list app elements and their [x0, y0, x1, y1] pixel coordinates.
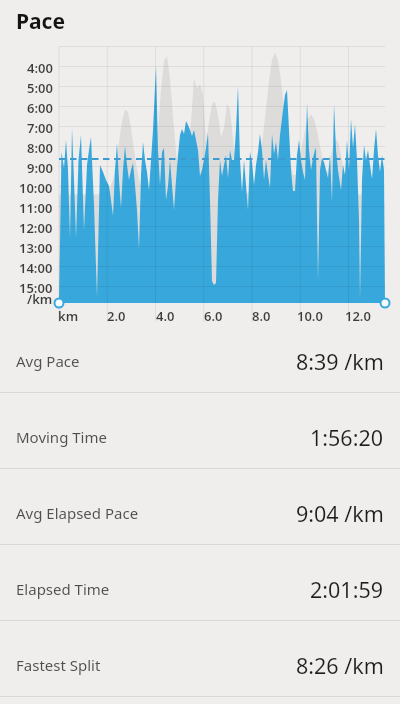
staticText: Fastest Split	[16, 655, 101, 675]
staticText: 5:00	[27, 79, 53, 95]
staticText: /km	[27, 290, 53, 306]
staticText: 2:01:59	[310, 575, 384, 604]
button[interactable]: Fastest Split	[0, 621, 400, 697]
staticText: 8.0	[252, 307, 271, 323]
staticText: Moving Time	[16, 427, 107, 447]
staticText: Avg Pace	[16, 351, 80, 371]
staticText: Pace	[16, 7, 65, 36]
staticText: 7:00	[27, 119, 53, 135]
button[interactable]: Avg Elapsed Pace	[0, 469, 400, 545]
staticText: 8:39 /km	[296, 347, 384, 376]
staticText: 15:00	[19, 279, 53, 295]
staticText: 4:00	[27, 59, 53, 75]
staticText: 13:00	[19, 239, 53, 255]
staticText: 14:00	[19, 259, 53, 275]
staticText: 11:00	[19, 199, 53, 215]
staticText: 12:00	[19, 219, 53, 235]
staticText: 1:56:20	[310, 423, 384, 452]
staticText: 9:00	[27, 159, 53, 175]
staticText: Avg Elapsed Pace	[16, 503, 139, 523]
staticText: 8:26 /km	[296, 651, 384, 680]
staticText: km	[58, 307, 79, 323]
staticText: Elapsed Time	[16, 579, 110, 599]
staticText: 6:00	[27, 99, 53, 115]
button[interactable]: Elapsed Time	[0, 545, 400, 621]
staticText: 6.0	[204, 307, 223, 323]
staticText: 10:00	[19, 179, 53, 195]
staticText: 12.0	[345, 307, 371, 323]
button[interactable]: Moving Time	[0, 393, 400, 469]
staticText: 8:00	[27, 139, 53, 155]
staticText: 9:04 /km	[296, 499, 384, 528]
button[interactable]: Avg Pace	[0, 317, 400, 393]
staticText: 2.0	[107, 307, 126, 323]
staticText: 4.0	[156, 307, 175, 323]
staticText: 10.0	[297, 307, 323, 323]
